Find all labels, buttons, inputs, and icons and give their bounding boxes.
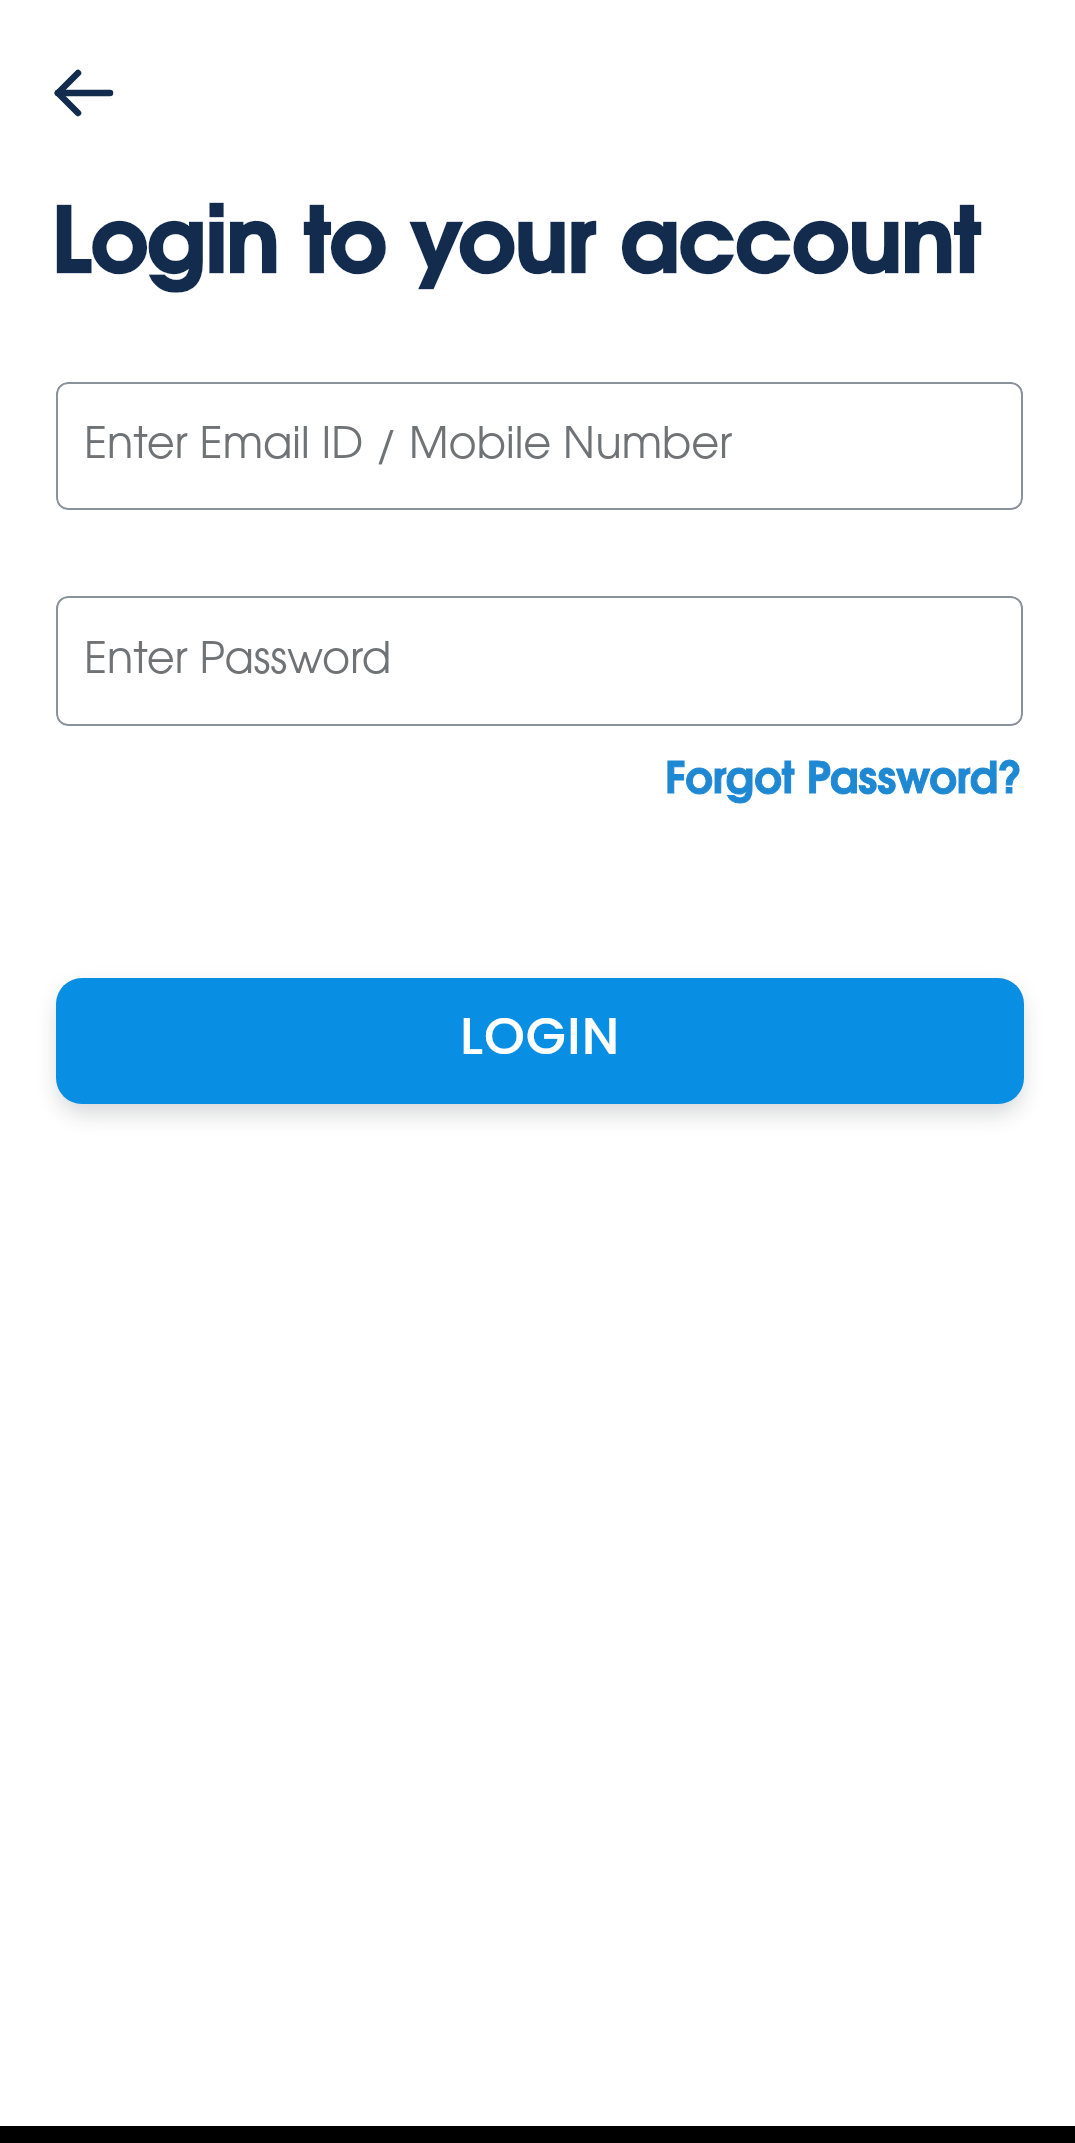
button[interactable]: Enter Password [56,596,1023,726]
staticText: Forgot Password? [665,761,1023,801]
button[interactable]: Enter Email ID / Mobile Number [56,382,1023,510]
staticText: Login to your account [52,206,981,288]
button[interactable]: Forgot Password? [665,761,1023,801]
staticText: Login to your account [52,206,981,288]
staticText: LOGIN [460,999,621,1072]
button[interactable]: LOGIN [56,978,1024,1104]
staticText: Enter Password [84,641,392,681]
staticText: Forgot Password? [665,761,1023,801]
button[interactable] [44,60,124,126]
staticText: Enter Email ID / Mobile Number [84,426,733,466]
